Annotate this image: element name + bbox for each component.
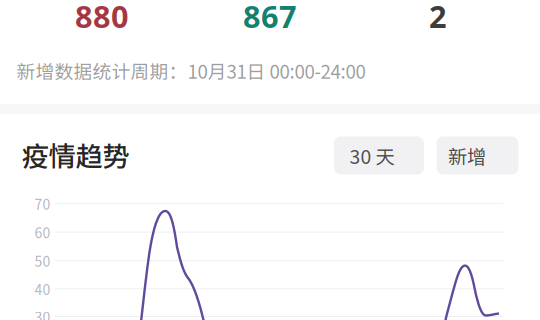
button[interactable]: 30 天: [334, 136, 424, 174]
staticText: 疫情趋势: [21, 135, 129, 174]
staticText: 30: [34, 306, 50, 320]
staticText: 867: [243, 0, 297, 36]
staticText: 880: [75, 0, 129, 36]
staticText: 40: [34, 279, 50, 299]
staticText: 新增: [448, 141, 486, 169]
staticText: 70: [34, 193, 50, 214]
staticText: 60: [34, 222, 50, 242]
staticText: 新增数据统计周期：10月31日 00:00-24:00: [16, 57, 365, 84]
staticText: 50: [34, 250, 50, 271]
staticText: 30 天: [349, 141, 394, 169]
staticText: 2: [429, 0, 447, 36]
button[interactable]: 新增: [436, 136, 518, 174]
